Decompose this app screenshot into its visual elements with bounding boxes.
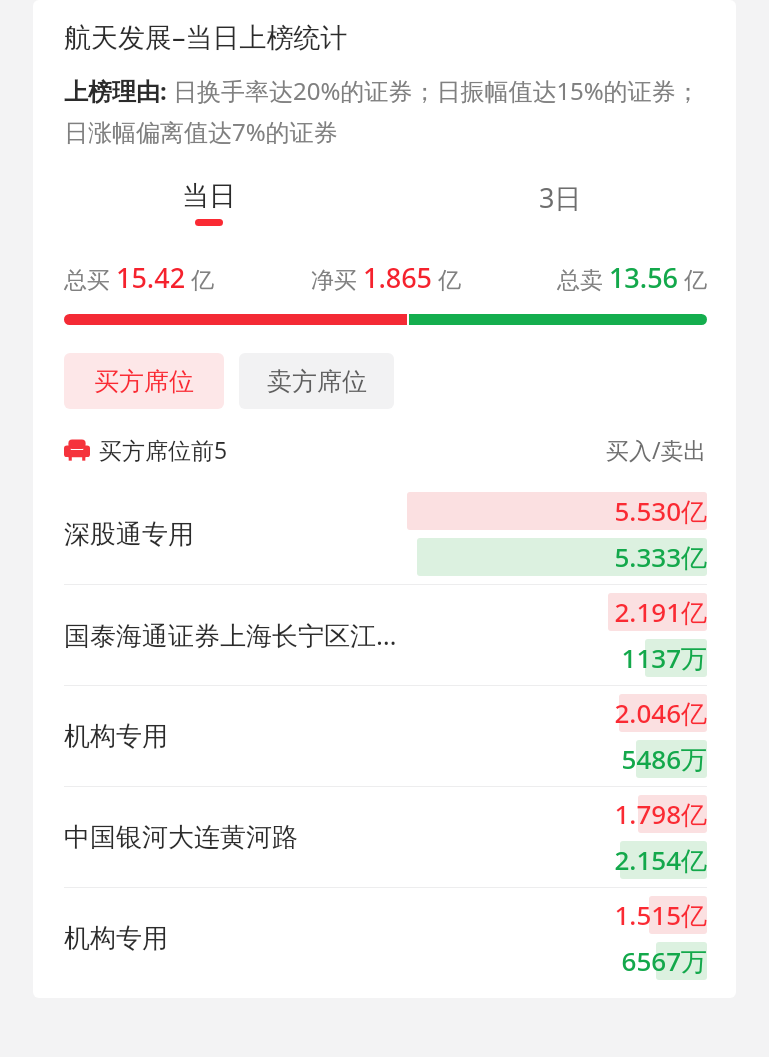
staticText: 5486万 <box>621 741 707 777</box>
staticText: 1137万 <box>621 640 707 676</box>
staticText: 当日 <box>182 179 236 213</box>
button[interactable]: 3日 <box>384 179 736 229</box>
staticText: 中国银河大连黄河路 <box>64 821 399 854</box>
staticText: 净买 1.865 亿 <box>279 259 493 296</box>
staticText: 2.046亿 <box>614 695 707 731</box>
staticText: 总买 15.42 亿 <box>64 259 279 296</box>
staticText: 总卖 13.56 亿 <box>493 259 707 296</box>
staticText: 2.191亿 <box>614 594 707 630</box>
button[interactable]: 国泰海通证券上海长宁区江… <box>33 585 736 685</box>
staticText: 买入/卖出 <box>606 434 707 465</box>
button[interactable]: 当日 <box>33 179 384 226</box>
button[interactable]: 卖方席位 <box>239 353 394 409</box>
staticText: 6567万 <box>621 943 707 979</box>
button[interactable]: 机构专用 <box>33 686 736 786</box>
staticText: 2.154亿 <box>614 842 707 878</box>
staticText: 5.530亿 <box>614 493 707 529</box>
staticText: 买方席位前5 <box>99 434 228 465</box>
staticText: 卖方席位 <box>267 366 367 397</box>
staticText: 航天发展–当日上榜统计 <box>64 18 348 55</box>
staticText: 买方席位 <box>94 366 194 397</box>
other: 买方席位图标 <box>64 437 90 463</box>
staticText: 1.798亿 <box>614 796 707 832</box>
staticText: 国泰海通证券上海长宁区江… <box>64 617 399 653</box>
staticText: 3日 <box>539 179 582 216</box>
button[interactable]: 买方席位 <box>64 353 224 409</box>
staticText: 深股通专用 <box>64 518 399 551</box>
staticText: 机构专用 <box>64 720 399 753</box>
staticText: 机构专用 <box>64 922 399 955</box>
staticText: 上榜理由: 日换手率达20%的证券；日振幅值达15%的证券；日涨幅偏离值达7%的… <box>64 74 708 149</box>
staticText: 1.515亿 <box>614 897 707 933</box>
staticText: 5.333亿 <box>614 539 707 575</box>
button[interactable]: 中国银河大连黄河路 <box>33 787 736 887</box>
button[interactable]: 深股通专用 <box>33 484 736 584</box>
button[interactable]: 机构专用 <box>33 888 736 988</box>
